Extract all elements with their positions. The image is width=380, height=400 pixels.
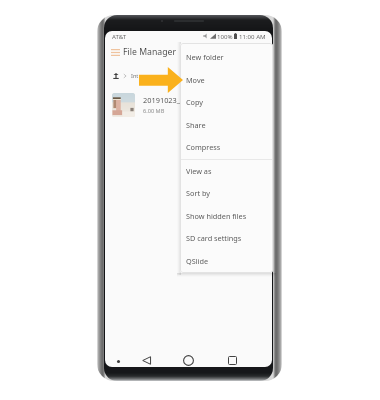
staticText: Show hidden files xyxy=(186,211,247,221)
staticText: Move xyxy=(186,75,205,85)
button[interactable]: Show hidden files xyxy=(180,204,273,227)
button[interactable]: Open navigation drawer xyxy=(111,45,120,59)
staticText: AT&T xyxy=(112,32,127,40)
button[interactable]: Sort by xyxy=(180,181,273,204)
button[interactable]: Recent apps xyxy=(224,353,240,367)
button[interactable]: Back xyxy=(138,353,154,367)
button[interactable]: Notification xyxy=(112,355,124,367)
staticText: File Manager xyxy=(123,46,176,58)
staticText: 20191023_ xyxy=(143,95,181,105)
button[interactable]: Copy xyxy=(180,90,273,113)
button[interactable]: Home xyxy=(180,353,196,367)
button[interactable]: Compress xyxy=(180,135,273,158)
button[interactable]: Share xyxy=(180,113,273,136)
button[interactable]: Move xyxy=(180,68,273,91)
button[interactable]: View as xyxy=(180,159,273,182)
staticText: 100% xyxy=(217,32,233,40)
staticText: View as xyxy=(186,166,212,176)
staticText: Compress xyxy=(186,142,221,152)
staticText: SD card settings xyxy=(186,233,242,243)
staticText: New folder xyxy=(186,52,224,62)
staticText: QSlide xyxy=(186,256,209,266)
staticText: Share xyxy=(186,120,206,130)
button[interactable]: New folder xyxy=(180,45,273,68)
staticText: 11:00 AM xyxy=(239,32,266,40)
button[interactable]: SD card settings xyxy=(180,226,273,249)
staticText: 6.00 MB xyxy=(143,107,165,115)
staticText: Sort by xyxy=(186,188,211,198)
button[interactable]: QSlide xyxy=(180,249,273,272)
staticText: Copy xyxy=(186,97,204,107)
button[interactable]: 20191023_ xyxy=(112,92,272,118)
staticText: Int xyxy=(131,72,139,80)
button[interactable]: Up one level xyxy=(113,69,272,83)
